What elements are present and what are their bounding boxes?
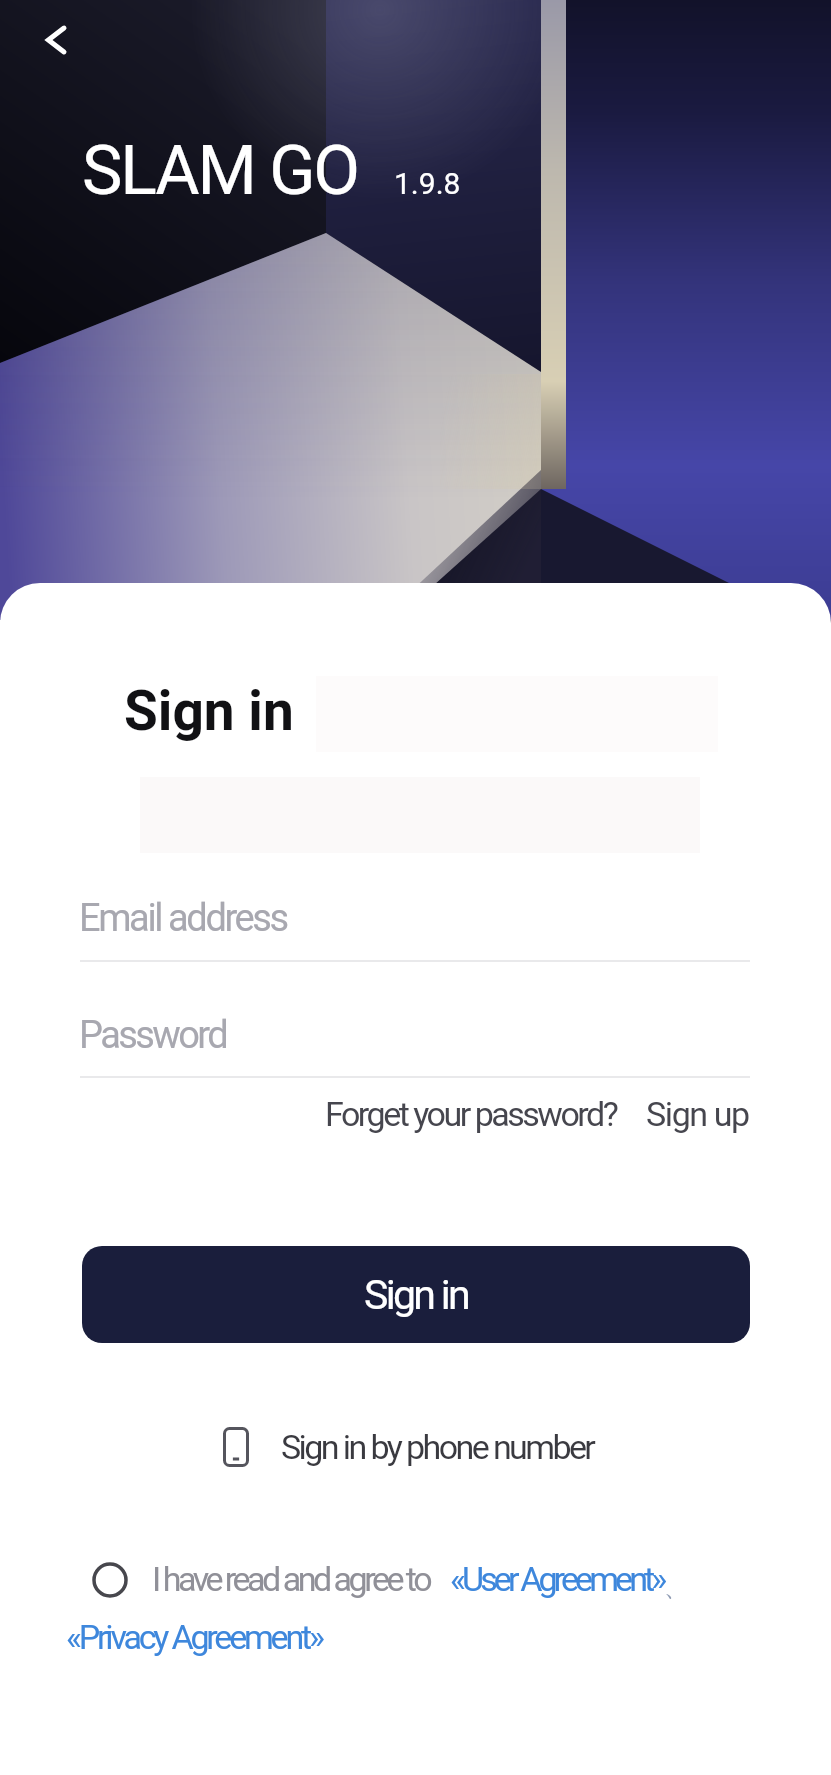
staticText: 1.9.8 — [394, 166, 461, 201]
staticText: 、 — [664, 1573, 688, 1603]
button[interactable]: Password — [79, 1013, 831, 1058]
staticText: Sign in — [364, 1271, 468, 1319]
staticText: Sign in by phone number — [281, 1427, 594, 1467]
button[interactable]: «Privacy Agreement» — [66, 1617, 322, 1657]
staticText: Sign in — [124, 679, 294, 743]
button[interactable] — [92, 1562, 128, 1598]
button[interactable]: Sign up — [646, 1094, 749, 1134]
button[interactable]: Sign in by phone number — [223, 1427, 594, 1467]
button[interactable]: Email address — [79, 896, 831, 941]
button[interactable]: Sign in — [82, 1246, 750, 1343]
button[interactable]: «User Agreement» — [450, 1559, 664, 1599]
button[interactable] — [30, 14, 82, 66]
staticText: I have read and agree to — [152, 1559, 430, 1599]
staticText: SLAM GO — [82, 131, 358, 211]
button[interactable]: Forget your password? — [325, 1094, 617, 1134]
